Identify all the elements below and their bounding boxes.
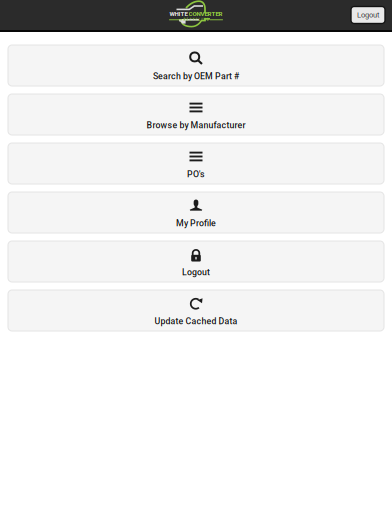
staticText: Browse by Manufacturer (146, 120, 245, 130)
button[interactable]: Update Cached Data (8, 290, 384, 331)
staticText: CONVERTER (188, 10, 222, 17)
button[interactable]: My Profile (8, 192, 384, 233)
staticText: Logout (357, 11, 379, 19)
staticText: Update Cached Data (154, 316, 237, 326)
button[interactable]: PO's (8, 143, 384, 184)
staticText: Search by OEM Part # (153, 71, 239, 81)
staticText: PO's (187, 169, 205, 179)
staticText: WHITE (169, 10, 187, 17)
staticText: My Profile (176, 218, 216, 228)
button[interactable]: Logout (351, 6, 385, 23)
button[interactable]: Logout (8, 241, 384, 282)
button[interactable]: Search by OEM Part # (8, 45, 384, 86)
button[interactable]: Browse by Manufacturer (8, 94, 384, 135)
staticText: R E C Y C L I N G (183, 18, 208, 22)
staticText: Logout (182, 267, 210, 277)
